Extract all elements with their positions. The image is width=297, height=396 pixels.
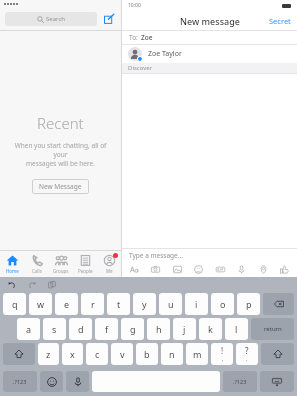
button[interactable]: .?123 (3, 371, 37, 392)
button[interactable]: o (211, 293, 234, 315)
staticText: ? (245, 345, 249, 356)
button[interactable]: Calls (25, 251, 49, 277)
button[interactable]: t (107, 293, 130, 315)
staticText: Search (46, 15, 65, 23)
staticText: k (208, 323, 213, 335)
staticText: Me (106, 268, 113, 274)
staticText: Secret (269, 16, 291, 26)
staticText: Home (6, 268, 19, 274)
button[interactable]: Shift (261, 343, 294, 365)
button[interactable]: w (29, 293, 52, 315)
button[interactable]: Dictation (66, 371, 89, 392)
staticText: d (78, 323, 84, 335)
staticText: p (246, 298, 252, 310)
staticText: To: (129, 33, 138, 42)
button[interactable]: return (251, 318, 294, 340)
staticText: h (156, 323, 162, 335)
button[interactable]: Zoe Taylor (122, 45, 297, 63)
button[interactable]: Paste (46, 279, 57, 290)
button[interactable]: .?123 (223, 371, 257, 392)
button[interactable]: Secret (263, 13, 297, 29)
button[interactable]: ! (211, 343, 233, 365)
staticText: y (142, 298, 147, 310)
staticText: People (78, 268, 93, 274)
button[interactable]: c (86, 343, 108, 365)
staticText: j (183, 323, 186, 335)
button[interactable]: z (38, 343, 59, 365)
button[interactable]: Undo (6, 279, 17, 290)
button[interactable]: e (55, 293, 78, 315)
button[interactable]: Photos (171, 263, 184, 276)
button[interactable]: ? (236, 343, 258, 365)
staticText: t (117, 298, 121, 310)
button[interactable]: k (199, 318, 222, 340)
staticText: ! (221, 345, 224, 356)
staticText: w (37, 298, 45, 310)
button[interactable]: Groups (49, 251, 73, 277)
button[interactable]: a (17, 318, 40, 340)
staticText: u (168, 298, 174, 310)
button[interactable]: Backspace (263, 293, 294, 315)
button[interactable]: Me (97, 251, 121, 277)
button[interactable]: People (73, 251, 97, 277)
staticText: . (246, 356, 248, 363)
button[interactable]: r (81, 293, 104, 315)
staticText: , (222, 356, 224, 363)
button[interactable]: New Message (32, 179, 89, 194)
button[interactable]: Home (0, 251, 25, 277)
button[interactable]: v (111, 343, 133, 365)
button[interactable]: g (121, 318, 144, 340)
staticText: c (95, 348, 100, 360)
staticText: Zoe (141, 33, 153, 42)
button[interactable]: New message (102, 12, 116, 26)
button[interactable]: Hide keyboard (260, 371, 294, 392)
button[interactable]: Emoji (40, 371, 63, 392)
button[interactable] (92, 371, 220, 392)
button[interactable]: Like (278, 263, 291, 276)
button[interactable]: d (69, 318, 92, 340)
button[interactable]: Shift (3, 343, 35, 365)
staticText: Discover (128, 64, 153, 72)
staticText: a (26, 323, 32, 335)
staticText: New Message (39, 182, 82, 191)
staticText: m (193, 348, 202, 360)
button[interactable]: i (185, 293, 208, 315)
staticText: .?123 (233, 378, 247, 385)
button[interactable]: m (186, 343, 208, 365)
button[interactable]: Stickers (192, 263, 205, 276)
button[interactable]: Location (257, 263, 270, 276)
button[interactable]: p (237, 293, 260, 315)
staticText: s (52, 323, 57, 335)
staticText: Zoe Taylor (148, 49, 182, 59)
staticText: i (195, 298, 198, 310)
button[interactable]: Text format (128, 263, 141, 276)
staticText: r (91, 298, 95, 310)
staticText: g (130, 323, 136, 335)
staticText: v (120, 348, 125, 360)
staticText: Type a message... (129, 251, 183, 260)
staticText: Calls (32, 268, 42, 274)
staticText: q (12, 298, 18, 310)
button[interactable]: n (161, 343, 183, 365)
staticText: .?123 (13, 378, 27, 385)
staticText: Groups (53, 268, 69, 274)
button[interactable]: Voice message (235, 263, 248, 276)
button[interactable]: y (133, 293, 156, 315)
button[interactable]: q (3, 293, 26, 315)
staticText: New message (180, 15, 240, 27)
button[interactable]: l (225, 318, 248, 340)
staticText: Recent (37, 113, 84, 133)
button[interactable]: Search (5, 12, 97, 26)
button[interactable]: x (62, 343, 83, 365)
button[interactable]: u (159, 293, 182, 315)
button[interactable]: j (173, 318, 196, 340)
button[interactable]: GIF (214, 263, 227, 276)
staticText: return (264, 325, 282, 333)
button[interactable]: h (147, 318, 170, 340)
button[interactable]: Redo (26, 279, 37, 290)
button[interactable]: Camera (149, 263, 162, 276)
button[interactable]: s (43, 318, 66, 340)
staticText: n (169, 348, 175, 360)
button[interactable]: b (136, 343, 158, 365)
button[interactable]: f (95, 318, 118, 340)
